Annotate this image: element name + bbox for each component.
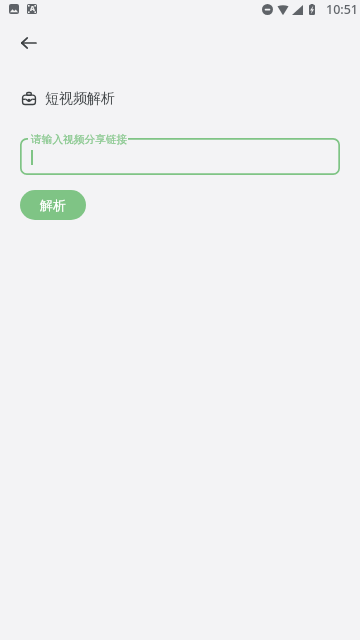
button[interactable]: Back xyxy=(8,22,49,63)
staticText: 10:51 xyxy=(326,1,359,18)
staticText: 短视频解析 xyxy=(45,90,115,108)
staticText: A xyxy=(30,4,35,14)
button[interactable]: 解析 xyxy=(20,190,86,220)
staticText: 请输入视频分享链接 xyxy=(31,133,128,146)
button[interactable]: 请输入视频分享链接 xyxy=(20,130,340,175)
staticText: 解析 xyxy=(40,197,66,213)
